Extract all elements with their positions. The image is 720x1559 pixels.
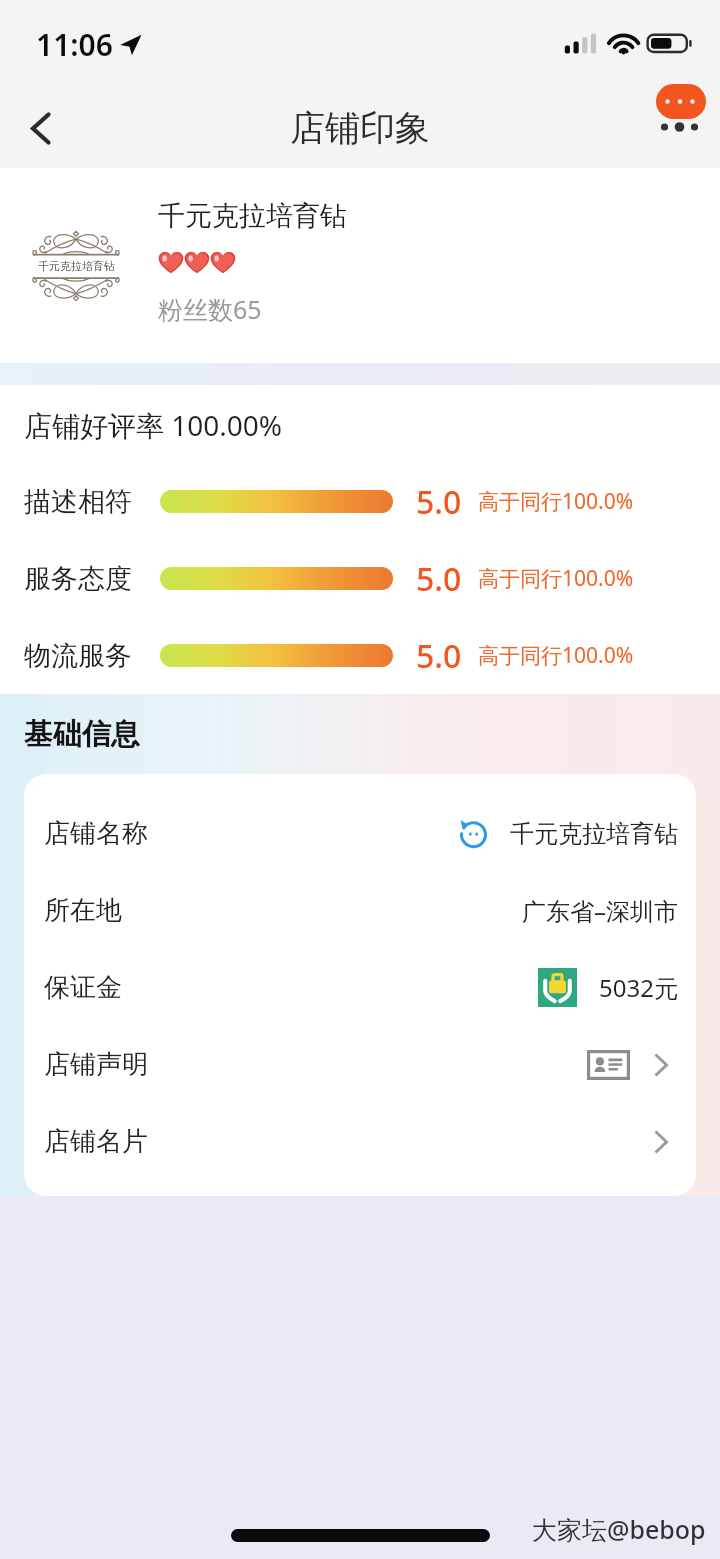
staticText: 物流服务 — [24, 639, 132, 673]
button[interactable]: More options — [652, 84, 710, 144]
staticText: 描述相符 — [24, 485, 132, 519]
staticText: 5.0 — [416, 557, 462, 601]
button[interactable]: Back — [0, 88, 80, 168]
button[interactable]: 千元克拉培育钻 — [0, 168, 720, 363]
staticText: 保证金 — [44, 971, 122, 1004]
staticText: 所在地 — [44, 894, 122, 927]
staticText: 5032元 — [599, 971, 678, 1004]
button[interactable]: 店铺名片 — [44, 1103, 678, 1180]
staticText: 千元克拉培育钻 — [38, 259, 115, 273]
staticText: 千元克拉培育钻 — [158, 199, 347, 233]
staticText: 高于同行100.0% — [478, 487, 634, 516]
staticText: 5.0 — [416, 480, 462, 524]
staticText: 11:06 — [36, 24, 113, 65]
staticText: 5.0 — [416, 634, 462, 678]
button[interactable]: 店铺声明 — [44, 1026, 678, 1103]
staticText: 服务态度 — [24, 562, 132, 596]
button[interactable]: 保证金 — [44, 949, 678, 1026]
staticText: 店铺声明 — [44, 1048, 148, 1081]
staticText: 店铺名片 — [44, 1125, 148, 1158]
staticText: 基础信息 — [24, 716, 140, 753]
staticText: 千元克拉培育钻 — [510, 819, 678, 849]
staticText: 大家坛@bebop — [532, 1512, 706, 1546]
staticText: 高于同行100.0% — [478, 641, 634, 670]
staticText: 店铺好评率 100.00% — [24, 406, 283, 444]
staticText: 店铺印象 — [290, 106, 430, 150]
staticText: 高于同行100.0% — [478, 564, 634, 593]
button[interactable]: 所在地 — [44, 872, 678, 949]
staticText: 粉丝数65 — [158, 292, 262, 326]
button[interactable]: 店铺名称 — [44, 795, 678, 872]
staticText: 广东省–深圳市 — [522, 894, 678, 927]
staticText: 店铺名称 — [44, 817, 148, 850]
